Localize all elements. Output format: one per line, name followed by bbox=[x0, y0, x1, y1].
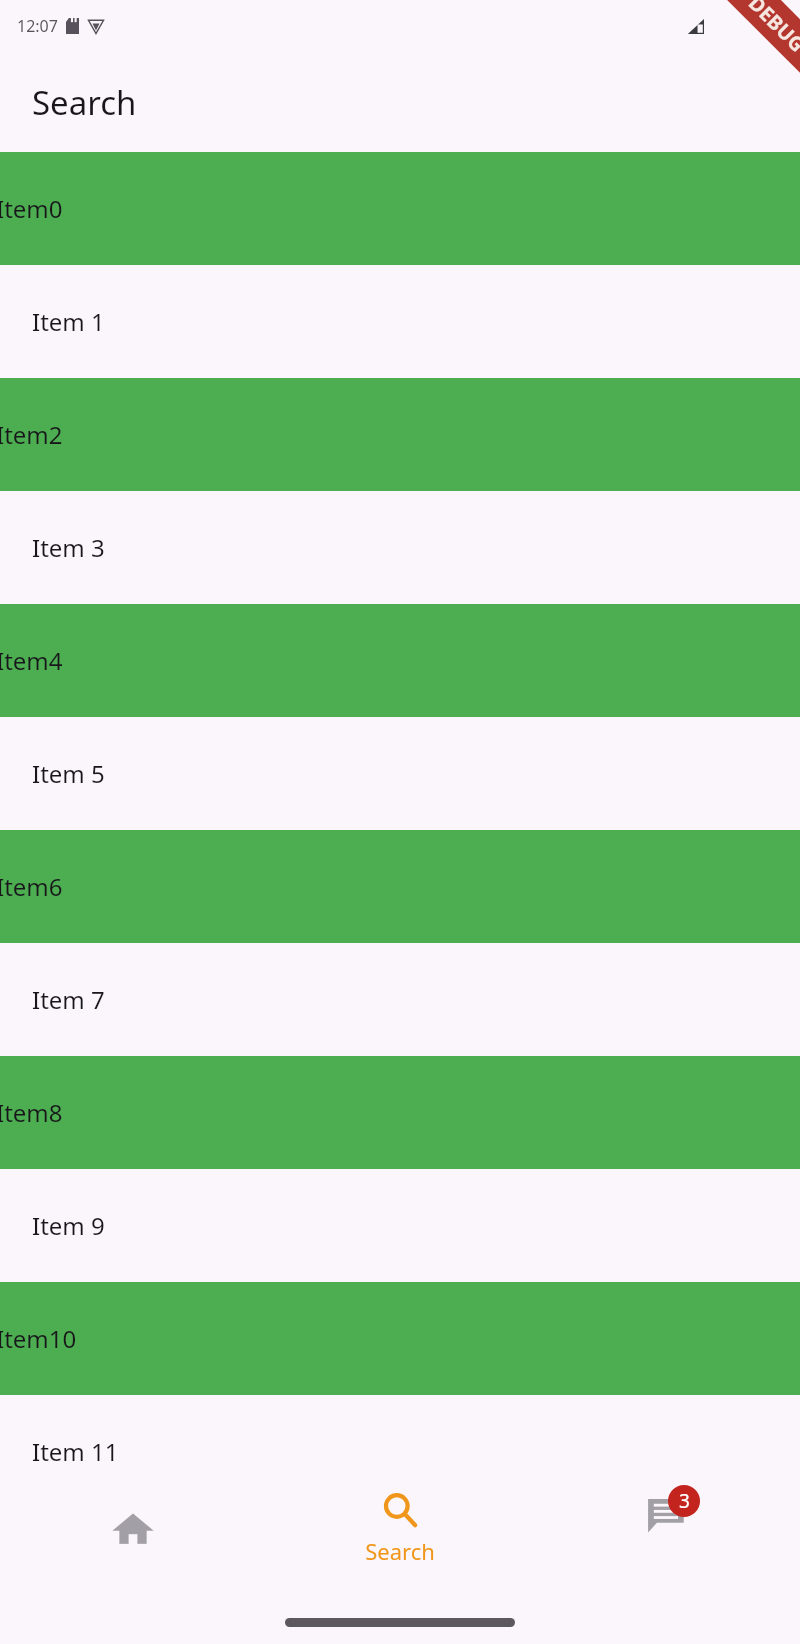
staticText: Item 3 bbox=[32, 531, 105, 564]
button[interactable]: Item4 bbox=[0, 604, 800, 717]
staticText: Search bbox=[365, 1536, 435, 1566]
button[interactable]: Item0 bbox=[0, 152, 800, 265]
staticText: Item 9 bbox=[32, 1209, 105, 1242]
staticText: Item 5 bbox=[32, 757, 105, 790]
staticText: DEBUG bbox=[743, 0, 800, 58]
button[interactable]: Item10 bbox=[0, 1282, 800, 1395]
staticText: Item 11 bbox=[32, 1435, 119, 1468]
button[interactable]: Item 11 bbox=[0, 1395, 800, 1468]
button[interactable]: Search bbox=[266, 1468, 533, 1588]
button[interactable]: Item 1 bbox=[0, 265, 800, 378]
button[interactable]: Item 7 bbox=[0, 943, 800, 1056]
button[interactable]: Item2 bbox=[0, 378, 800, 491]
staticText: Item 1 bbox=[32, 305, 105, 338]
staticText: Item8 bbox=[0, 1096, 63, 1129]
staticText: Item10 bbox=[0, 1322, 77, 1355]
staticText: Item2 bbox=[0, 418, 63, 451]
button[interactable]: Item8 bbox=[0, 1056, 800, 1169]
staticText: 3 bbox=[679, 1488, 690, 1514]
staticText: Search bbox=[32, 80, 137, 125]
button[interactable]: Item6 bbox=[0, 830, 800, 943]
button[interactable]: Home bbox=[0, 1468, 266, 1588]
button[interactable]: Item 9 bbox=[0, 1169, 800, 1282]
staticText: Item0 bbox=[0, 192, 63, 225]
staticText: Item 7 bbox=[32, 983, 105, 1016]
staticText: 12:07 bbox=[17, 15, 58, 37]
button[interactable]: Item 3 bbox=[0, 491, 800, 604]
button[interactable]: Messages bbox=[533, 1468, 800, 1588]
staticText: Item4 bbox=[0, 644, 63, 677]
button[interactable]: Item 5 bbox=[0, 717, 800, 830]
staticText: Item6 bbox=[0, 870, 63, 903]
